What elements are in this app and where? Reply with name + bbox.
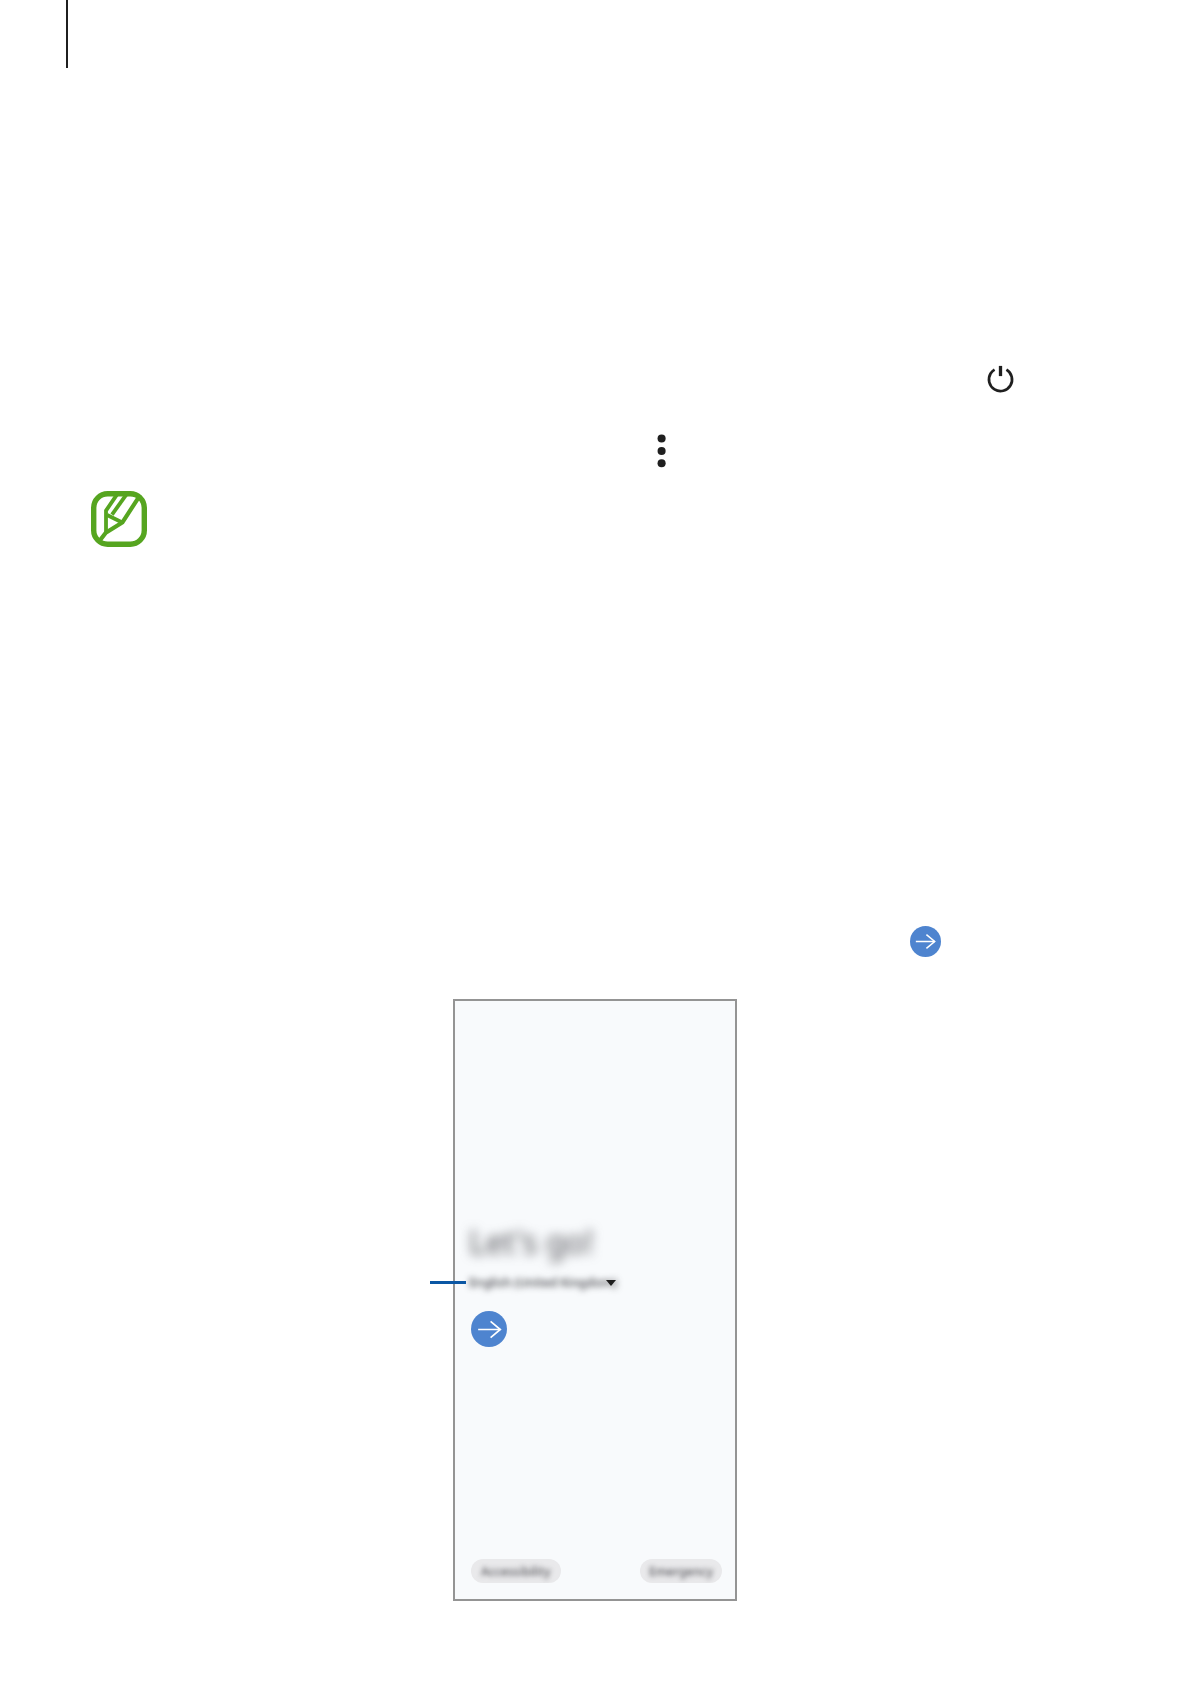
staticText: Emergency <box>649 1563 713 1579</box>
button[interactable]: Next <box>910 926 941 957</box>
button[interactable]: Continue <box>471 1311 507 1347</box>
button[interactable]: Emergency <box>640 1559 722 1583</box>
button[interactable]: Power <box>985 364 1016 395</box>
button[interactable]: More options <box>650 430 672 472</box>
staticText: English (United Kingdom) <box>469 1274 617 1291</box>
staticText: Let's go! <box>469 1220 594 1264</box>
staticText: Accessibility <box>481 1563 551 1579</box>
button[interactable]: Accessibility <box>471 1559 561 1583</box>
